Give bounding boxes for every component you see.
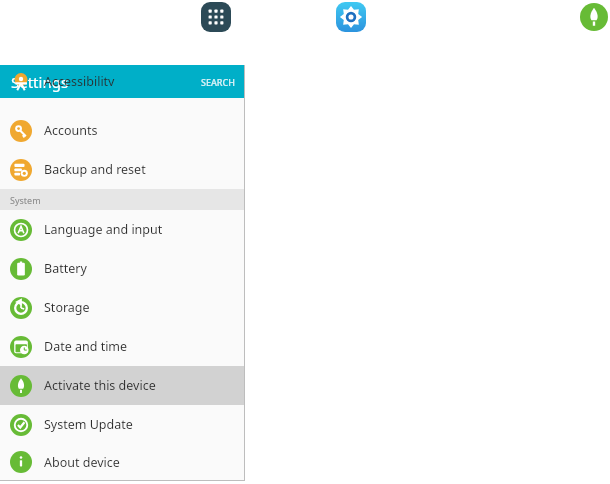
button[interactable]: Backup and reset xyxy=(0,150,244,189)
button[interactable]: Activate this device xyxy=(0,366,244,405)
button[interactable]: Activate this device xyxy=(580,3,608,31)
button[interactable]: Accounts xyxy=(0,111,244,150)
staticText: Battery xyxy=(44,260,87,277)
button[interactable]: About device xyxy=(0,444,244,480)
staticText: System Update xyxy=(44,416,133,433)
staticText: Activate this device xyxy=(44,377,156,394)
button[interactable]: SEARCH xyxy=(192,65,244,98)
button[interactable]: Settings xyxy=(0,65,244,98)
staticText: Backup and reset xyxy=(44,161,146,178)
staticText: About device xyxy=(44,454,120,471)
button[interactable]: Date and time xyxy=(0,327,244,366)
button[interactable]: Apps xyxy=(201,2,231,32)
staticText: Accessibility xyxy=(44,73,115,86)
staticText: Language and input xyxy=(44,221,163,238)
staticText: Accounts xyxy=(44,122,98,139)
button[interactable]: Settings xyxy=(336,2,366,32)
staticText: Storage xyxy=(44,299,90,316)
button[interactable]: System Update xyxy=(0,405,244,444)
staticText: System xyxy=(10,194,41,206)
button[interactable]: Battery xyxy=(0,249,244,288)
button[interactable]: Language and input xyxy=(0,210,244,249)
button[interactable]: Storage xyxy=(0,288,244,327)
staticText: Date and time xyxy=(44,338,128,355)
staticText: Settings xyxy=(11,72,69,92)
staticText: SEARCH xyxy=(201,76,235,88)
